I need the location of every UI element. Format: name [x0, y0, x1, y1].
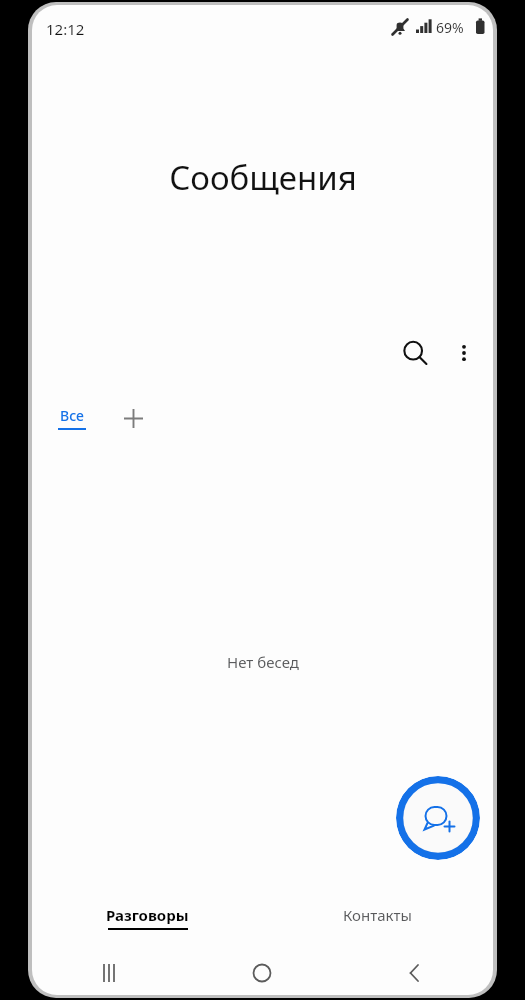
staticText: Сообщения — [169, 155, 357, 200]
staticText: Контакты — [343, 905, 412, 925]
button[interactable]: Home — [185, 951, 339, 995]
button[interactable]: Все — [54, 404, 90, 432]
button[interactable]: New conversation — [396, 776, 480, 860]
button[interactable]: Search — [389, 327, 441, 379]
button[interactable]: Разговоры — [32, 893, 262, 941]
staticText: 12:12 — [46, 19, 85, 39]
staticText: Разговоры — [106, 905, 189, 925]
button[interactable]: Контакты — [262, 893, 493, 941]
button[interactable]: Add filter — [116, 401, 150, 435]
staticText: Все — [60, 406, 84, 425]
staticText: 69% — [436, 18, 464, 37]
button[interactable]: Back — [339, 951, 493, 995]
button[interactable]: Recents — [32, 951, 185, 995]
staticText: Нет бесед — [227, 652, 299, 672]
button[interactable]: More options — [441, 330, 487, 376]
